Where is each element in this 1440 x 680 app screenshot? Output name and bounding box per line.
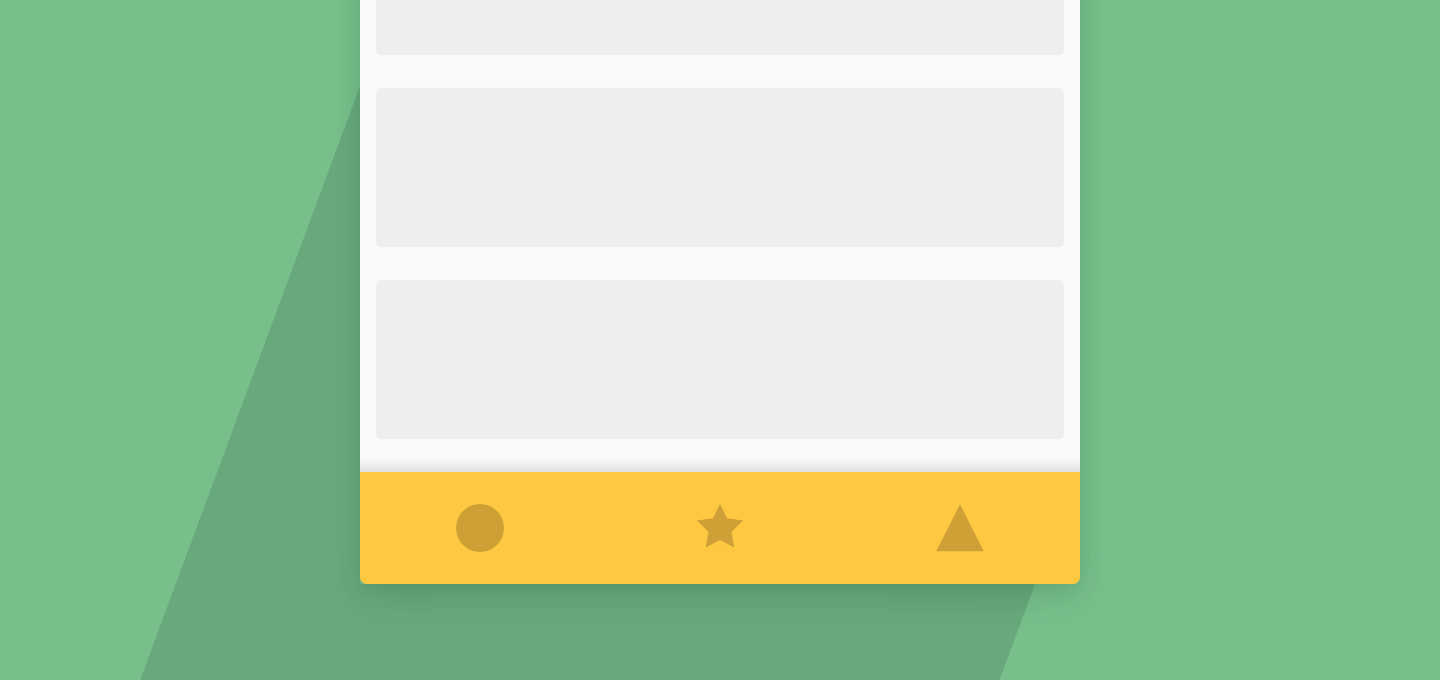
button[interactable]: Favorites	[600, 472, 840, 584]
button[interactable]: Home	[360, 472, 600, 584]
button[interactable]: Notifications	[840, 472, 1080, 584]
